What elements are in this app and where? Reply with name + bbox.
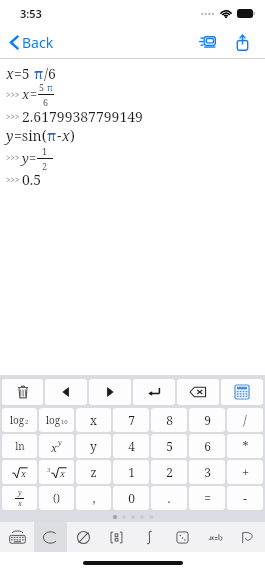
button[interactable]: - <box>227 486 263 510</box>
staticText: 3:53 <box>20 6 42 21</box>
button[interactable]: History <box>194 29 220 55</box>
staticText: = <box>29 149 37 167</box>
staticText: y <box>90 438 97 454</box>
staticText: /6 <box>44 64 56 81</box>
button[interactable]: y <box>76 434 111 458</box>
staticText: 5 <box>166 438 173 454</box>
button[interactable]: . <box>151 486 187 510</box>
staticText: + <box>242 464 249 480</box>
staticText: y <box>18 488 22 498</box>
staticText: / <box>243 412 247 428</box>
staticText: ) <box>70 126 75 145</box>
staticText: >>> <box>6 174 20 185</box>
button[interactable]: 8 <box>151 408 187 432</box>
staticText: * <box>242 438 249 454</box>
button[interactable]: 4 <box>113 434 149 458</box>
staticText: Back <box>22 33 54 52</box>
button[interactable]: x <box>76 408 111 432</box>
staticText: 1 <box>42 145 48 157</box>
staticText: 2.61799387799149 <box>22 107 143 126</box>
staticText: , <box>92 490 96 506</box>
staticText: x <box>90 412 97 428</box>
staticText: - <box>243 490 247 506</box>
button[interactable]: Calculator <box>221 379 263 405</box>
staticText: >>> <box>6 111 20 122</box>
staticText: x <box>22 85 30 103</box>
button[interactable]: log <box>2 408 37 432</box>
staticText: x <box>62 126 70 145</box>
staticText: 4 <box>128 438 135 454</box>
button[interactable]: z <box>76 460 111 484</box>
button[interactable]: 9 <box>189 408 225 432</box>
button[interactable]: Delete all <box>2 379 43 405</box>
staticText: 3 <box>47 466 51 474</box>
button[interactable]: 6 <box>189 434 225 458</box>
button[interactable]: Integral <box>133 522 166 552</box>
button[interactable]: Random <box>166 522 199 552</box>
staticText: 7 <box>128 412 135 428</box>
button[interactable]: Keyboard <box>0 522 34 552</box>
button[interactable]: log <box>39 408 74 432</box>
staticText: =5 <box>14 64 34 81</box>
button[interactable]: , <box>76 486 111 510</box>
staticText: x <box>6 64 14 81</box>
staticText: π <box>34 64 44 81</box>
button[interactable]: Functions <box>34 522 67 552</box>
button[interactable]: * <box>227 434 263 458</box>
button[interactable]: 2 <box>151 460 187 484</box>
staticText: 10 <box>61 418 68 426</box>
staticText: 9 <box>204 412 211 428</box>
staticText: log <box>10 413 25 427</box>
staticText: π <box>47 126 57 145</box>
button[interactable]: Backspace <box>177 379 219 405</box>
staticText: =sin( <box>14 126 47 145</box>
staticText: 8 <box>166 412 173 428</box>
button[interactable]: () <box>39 486 74 510</box>
button[interactable]: x <box>2 460 37 484</box>
button[interactable]: = <box>189 486 225 510</box>
button[interactable]: 3 <box>39 460 74 484</box>
staticText: y <box>22 149 29 167</box>
button[interactable]: Graph <box>232 522 265 552</box>
staticText: >>> <box>6 89 20 100</box>
staticText: y <box>6 126 14 145</box>
staticText: x <box>21 467 26 479</box>
staticText: y <box>58 438 62 448</box>
button[interactable]: Back <box>6 29 58 56</box>
button[interactable]: 3 <box>189 460 225 484</box>
button[interactable]: Matrix <box>100 522 133 552</box>
staticText: 6 <box>43 96 49 107</box>
button[interactable]: 1 <box>113 460 149 484</box>
staticText: x <box>60 467 65 479</box>
button[interactable]: + <box>227 460 263 484</box>
staticText: x <box>51 440 58 455</box>
staticText: . <box>167 490 171 506</box>
staticText: = <box>204 490 211 506</box>
staticText: ln <box>15 439 25 453</box>
staticText: x <box>18 499 22 509</box>
staticText: () <box>53 491 60 505</box>
button[interactable]: Empty set <box>67 522 100 552</box>
button[interactable]: Move left <box>45 379 87 405</box>
button[interactable]: Share <box>229 29 255 55</box>
staticText: π <box>47 81 53 93</box>
button[interactable]: x <box>39 434 74 458</box>
button[interactable]: ln <box>2 434 37 458</box>
button[interactable]: 5 <box>151 434 187 458</box>
staticText: 0 <box>128 490 135 506</box>
staticText: z <box>90 464 97 480</box>
staticText: 2 <box>25 418 29 426</box>
staticText: 2 <box>166 464 173 480</box>
staticText: 5 <box>39 81 47 93</box>
button[interactable]: Equation <box>199 522 232 552</box>
staticText: 3 <box>204 464 211 480</box>
staticText: >>> <box>6 152 20 163</box>
button[interactable]: 0 <box>113 486 149 510</box>
button[interactable]: y <box>2 486 37 510</box>
staticText: 0.5 <box>22 170 42 189</box>
staticText: 1 <box>128 464 135 480</box>
button[interactable]: Move right <box>89 379 131 405</box>
button[interactable]: Enter <box>133 379 175 405</box>
button[interactable]: 7 <box>113 408 149 432</box>
button[interactable]: / <box>227 408 263 432</box>
